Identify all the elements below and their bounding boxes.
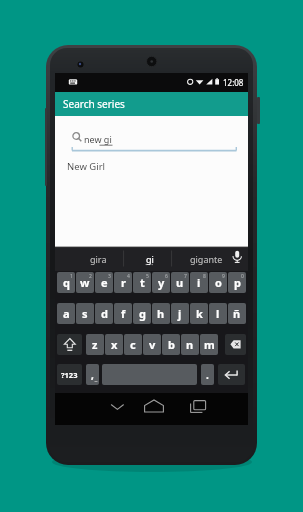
staticText: y — [158, 275, 165, 290]
staticText: 8 — [203, 273, 206, 280]
button[interactable]: x — [105, 334, 123, 355]
button[interactable]: t — [133, 272, 151, 293]
staticText: s — [82, 306, 88, 321]
staticText: h — [157, 306, 165, 321]
button[interactable]: n — [181, 334, 199, 355]
staticText: x — [111, 337, 118, 352]
staticText: 3 — [108, 273, 111, 280]
staticText: m — [204, 337, 215, 352]
button[interactable]: u — [171, 272, 189, 293]
staticText: ?123 — [61, 370, 78, 380]
button[interactable]: , — [86, 364, 99, 385]
button[interactable]: . — [201, 364, 214, 385]
staticText: j — [178, 306, 182, 321]
button[interactable]: a — [57, 303, 75, 324]
staticText: 12:08 — [223, 77, 244, 88]
button[interactable]: gira — [90, 253, 107, 265]
button[interactable]: k — [190, 303, 208, 324]
staticText: g — [139, 306, 146, 321]
staticText: u — [176, 275, 184, 290]
staticText: new gi — [84, 133, 112, 145]
button[interactable] — [97, 395, 137, 421]
staticText: o — [215, 275, 222, 290]
button[interactable]: e — [95, 272, 113, 293]
button[interactable]: l — [209, 303, 227, 324]
staticText: 6 — [165, 273, 168, 280]
button[interactable]: New Girl — [67, 160, 106, 173]
staticText: c — [130, 337, 136, 352]
staticText: . — [206, 368, 209, 382]
button[interactable]: ñ — [228, 303, 246, 324]
button[interactable]: f — [114, 303, 132, 324]
staticText: t — [140, 275, 145, 290]
staticText: a — [63, 306, 70, 321]
staticText: 1 — [70, 273, 73, 280]
button[interactable]: ?123 — [57, 364, 82, 385]
staticText: p — [234, 275, 241, 290]
staticText: 2 — [89, 273, 92, 280]
button[interactable]: w — [76, 272, 94, 293]
button[interactable]: o — [209, 272, 227, 293]
button[interactable]: gi — [146, 253, 154, 265]
button[interactable]: b — [162, 334, 180, 355]
button[interactable]: gigante — [190, 253, 223, 265]
button[interactable] — [178, 395, 218, 421]
staticText: 5 — [146, 273, 149, 280]
staticText: Search series — [63, 97, 125, 111]
button[interactable]: q — [57, 272, 75, 293]
button[interactable]: v — [143, 334, 161, 355]
staticText: n — [186, 337, 194, 352]
staticText: , — [91, 368, 94, 382]
button[interactable]: Search series — [55, 92, 248, 116]
button[interactable]: j — [171, 303, 189, 324]
button[interactable]: p — [228, 272, 246, 293]
staticText: 4 — [127, 273, 130, 280]
button[interactable] — [225, 334, 246, 355]
staticText: b — [168, 337, 175, 352]
button[interactable]: m — [200, 334, 218, 355]
button[interactable]: h — [152, 303, 170, 324]
staticText: r — [121, 275, 126, 290]
staticText: z — [92, 337, 98, 352]
button[interactable] — [134, 395, 174, 421]
staticText: e — [101, 275, 108, 290]
button[interactable]: z — [86, 334, 104, 355]
staticText: d — [101, 306, 108, 321]
staticText: 7 — [184, 273, 187, 280]
staticText: v — [149, 337, 156, 352]
staticText: w — [80, 275, 90, 290]
staticText: f — [121, 306, 126, 321]
button[interactable]: y — [152, 272, 170, 293]
staticText: k — [196, 306, 203, 321]
staticText: 9 — [222, 273, 225, 280]
staticText: q — [63, 275, 70, 290]
staticText: 0 — [241, 273, 244, 280]
button[interactable]: s — [76, 303, 94, 324]
button[interactable]: c — [124, 334, 142, 355]
staticText: ñ — [233, 306, 241, 321]
button[interactable]: g — [133, 303, 151, 324]
staticText: i — [197, 275, 201, 290]
button[interactable]: r — [114, 272, 132, 293]
button[interactable] — [218, 364, 245, 385]
staticText: l — [216, 306, 220, 321]
button[interactable]: d — [95, 303, 113, 324]
button[interactable]: i — [190, 272, 208, 293]
button[interactable] — [57, 334, 82, 355]
